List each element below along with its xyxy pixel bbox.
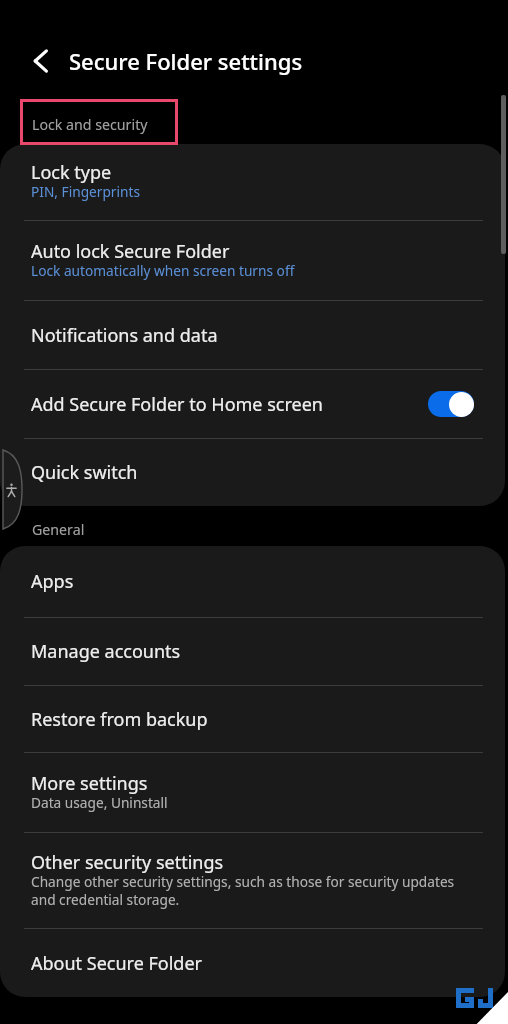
staticText: Data usage, Uninstall bbox=[31, 793, 168, 812]
button[interactable]: About Secure Folder bbox=[0, 929, 505, 997]
button[interactable]: Notifications and data bbox=[0, 301, 505, 369]
staticText: Manage accounts bbox=[31, 639, 181, 664]
staticText: General bbox=[32, 520, 85, 539]
button[interactable]: Other security settings bbox=[0, 833, 505, 928]
button[interactable]: Add Secure Folder to Home screen toggle bbox=[428, 391, 474, 417]
button[interactable]: Lock type bbox=[0, 144, 505, 220]
staticText: More settings bbox=[31, 771, 148, 796]
staticText: Notifications and data bbox=[31, 323, 218, 348]
staticText: Add Secure Folder to Home screen bbox=[31, 392, 323, 417]
staticText: PIN, Fingerprints bbox=[31, 182, 140, 201]
button[interactable]: Manage accounts bbox=[0, 618, 505, 685]
button[interactable]: Quick switch bbox=[0, 439, 505, 506]
staticText: Secure Folder settings bbox=[69, 46, 303, 76]
staticText: Lock and security bbox=[32, 115, 148, 134]
staticText: Lock automatically when screen turns off bbox=[31, 261, 295, 280]
button[interactable]: More settings bbox=[0, 753, 505, 832]
staticText: Change other security settings, such as … bbox=[31, 872, 455, 909]
staticText: Other security settings bbox=[31, 850, 224, 875]
button[interactable]: Auto lock Secure Folder bbox=[0, 221, 505, 300]
staticText: Auto lock Secure Folder bbox=[31, 239, 230, 264]
staticText: Apps bbox=[31, 569, 74, 594]
button[interactable]: Accessibility menu bbox=[3, 450, 22, 529]
staticText: Quick switch bbox=[31, 460, 138, 485]
button[interactable]: Apps bbox=[0, 546, 505, 617]
button[interactable]: Back bbox=[22, 43, 58, 79]
staticText: Restore from backup bbox=[31, 707, 208, 732]
staticText: About Secure Folder bbox=[31, 951, 202, 976]
staticText: Lock type bbox=[31, 160, 112, 185]
button[interactable]: Add Secure Folder to Home screen bbox=[0, 370, 505, 438]
button[interactable]: Restore from backup bbox=[0, 686, 505, 752]
